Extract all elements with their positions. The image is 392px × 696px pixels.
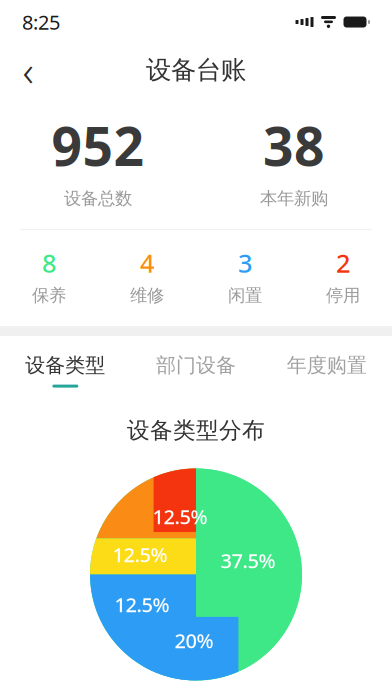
staticText: 设备类型分布 bbox=[127, 417, 265, 444]
staticText: 4 bbox=[140, 246, 154, 280]
staticText: 保养 bbox=[32, 285, 66, 306]
button[interactable]: 4 bbox=[98, 246, 196, 306]
staticText: 本年新购 bbox=[260, 188, 328, 209]
staticText: 年度购置 bbox=[287, 353, 367, 378]
staticText: 设备台账 bbox=[146, 54, 246, 85]
staticText: 8 bbox=[42, 246, 56, 280]
staticText: 设备类型 bbox=[25, 353, 105, 378]
staticText: 12.5% bbox=[112, 541, 167, 568]
staticText: 3 bbox=[238, 246, 252, 280]
staticText: 20% bbox=[174, 627, 213, 654]
staticText: 12.5% bbox=[152, 503, 207, 530]
button[interactable]: 8 bbox=[0, 246, 98, 306]
button[interactable]: 年度购置 bbox=[261, 350, 392, 391]
staticText: 部门设备 bbox=[156, 353, 236, 378]
staticText: 闲置 bbox=[228, 285, 262, 306]
staticText: 维修 bbox=[130, 285, 164, 306]
staticText: 12.5% bbox=[114, 591, 169, 618]
staticText: 952 bbox=[51, 110, 144, 181]
button[interactable]: 部门设备 bbox=[131, 350, 261, 391]
staticText: 停用 bbox=[326, 285, 360, 306]
staticText: 设备总数 bbox=[64, 188, 132, 209]
button[interactable]: 2 bbox=[294, 246, 392, 306]
staticText: 38 bbox=[263, 110, 325, 181]
staticText: 2 bbox=[336, 246, 350, 280]
staticText: 37.5% bbox=[220, 547, 275, 574]
staticText: ‹ bbox=[22, 42, 33, 98]
button[interactable]: 设备类型 bbox=[0, 350, 131, 391]
button[interactable]: Back bbox=[6, 48, 50, 92]
button[interactable]: 3 bbox=[196, 246, 294, 306]
staticText: 8:25 bbox=[22, 9, 60, 35]
